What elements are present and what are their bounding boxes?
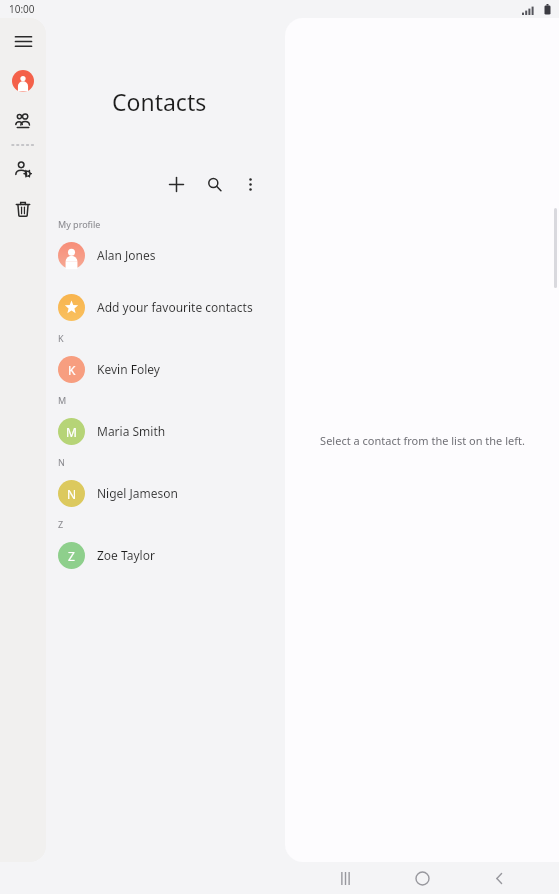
staticText: Maria Smith <box>97 423 166 439</box>
button[interactable]: Z <box>46 535 285 575</box>
button[interactable]: Recents <box>328 862 362 894</box>
button[interactable]: M <box>46 411 285 451</box>
staticText: K <box>68 362 76 378</box>
button[interactable]: N <box>46 473 285 513</box>
staticText: M <box>58 394 67 406</box>
staticText: Z <box>68 548 75 564</box>
button[interactable]: Manage contacts <box>6 152 40 186</box>
staticText: N <box>67 486 77 502</box>
button[interactable]: Alan Jones <box>46 235 285 275</box>
button[interactable]: Home <box>405 862 439 894</box>
staticText: N <box>58 456 65 468</box>
button[interactable]: Contacts <box>6 64 40 98</box>
staticText: K <box>58 332 64 344</box>
staticText: 10:00 <box>9 2 35 16</box>
staticText: Nigel Jameson <box>97 485 179 501</box>
button[interactable]: Search <box>199 169 229 199</box>
button[interactable]: Trash <box>6 192 40 226</box>
staticText: M <box>66 424 77 440</box>
button[interactable]: K <box>46 349 285 389</box>
button[interactable]: Add your favourite contacts <box>46 287 285 327</box>
staticText: Z <box>58 518 64 530</box>
button[interactable]: Add contact <box>161 169 191 199</box>
button[interactable]: Back <box>482 862 516 894</box>
staticText: My profile <box>58 218 101 230</box>
button[interactable]: More options <box>235 169 265 199</box>
staticText: Kevin Foley <box>97 361 160 377</box>
button[interactable]: Menu <box>6 24 40 58</box>
staticText: Select a contact from the list on the le… <box>320 433 525 448</box>
staticText: Add your favourite contacts <box>97 299 253 315</box>
button[interactable]: Groups <box>6 104 40 138</box>
staticText: Contacts <box>112 86 207 117</box>
staticText: Alan Jones <box>97 247 156 263</box>
staticText: Zoe Taylor <box>97 547 155 563</box>
